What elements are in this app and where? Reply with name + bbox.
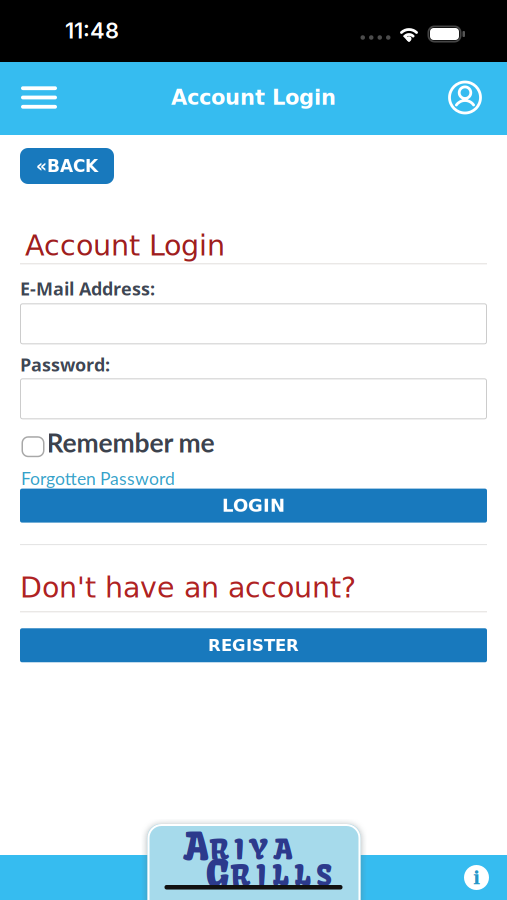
staticText: REGISTER [208, 636, 299, 655]
staticText: G [205, 850, 229, 897]
staticText: Forgotten Password [21, 468, 175, 489]
button[interactable]: LOGIN [20, 489, 487, 523]
staticText: Account Login [25, 229, 225, 262]
staticText: Remember me [46, 426, 214, 458]
staticText: i [473, 866, 480, 889]
staticText: «BACK [36, 156, 98, 176]
button[interactable]: Info [464, 865, 507, 890]
staticText: Account Login [171, 85, 336, 110]
button[interactable]: REGISTER [20, 628, 487, 662]
button[interactable]: Account [447, 79, 507, 115]
staticText: A [183, 824, 208, 870]
button[interactable]: Forgotten Password [20, 468, 175, 489]
staticText: Password: [20, 352, 110, 377]
button[interactable]: Remember me [20, 426, 214, 458]
button[interactable]: Back [20, 148, 114, 184]
staticText: R I L L S [230, 858, 331, 894]
staticText: Don't have an account? [20, 571, 356, 604]
staticText: LOGIN [222, 495, 285, 516]
staticText: E-Mail Address: [20, 276, 155, 301]
button[interactable]: Menu [0, 86, 57, 109]
staticText: 11:48 [65, 17, 119, 44]
staticText: R I Y A [209, 832, 292, 867]
